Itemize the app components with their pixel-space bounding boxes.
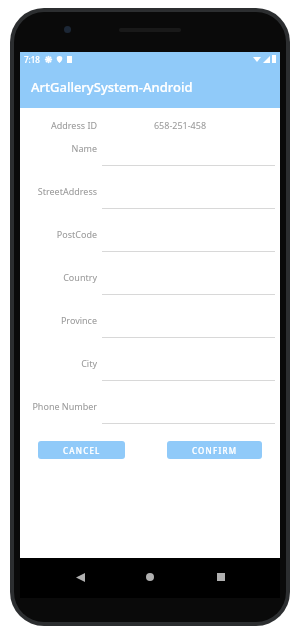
- staticText: Phone Number: [20, 400, 97, 412]
- button[interactable]: Recent apps: [210, 566, 232, 588]
- staticText: Address ID: [20, 119, 97, 131]
- staticText: Country: [20, 271, 97, 283]
- staticText: 7:18: [24, 54, 40, 65]
- staticText: Province: [20, 314, 97, 326]
- staticText: StreetAddress: [20, 185, 97, 197]
- button[interactable]: Province: [20, 313, 280, 351]
- button[interactable]: Country: [20, 270, 280, 308]
- staticText: CANCEL: [63, 445, 101, 456]
- staticText: 658-251-458: [140, 119, 220, 131]
- button[interactable]: Back: [69, 566, 91, 588]
- staticText: CONFIRM: [192, 445, 238, 456]
- staticText: PostCode: [20, 228, 97, 240]
- staticText: City: [20, 357, 97, 369]
- button[interactable]: City: [20, 356, 280, 394]
- staticText: Name: [20, 142, 97, 154]
- button[interactable]: Phone Number: [20, 399, 280, 437]
- button[interactable]: StreetAddress: [20, 184, 280, 222]
- staticText: ArtGallerySystem-Android: [31, 78, 193, 96]
- button[interactable]: PostCode: [20, 227, 280, 265]
- button[interactable]: CANCEL: [38, 441, 125, 459]
- button[interactable]: Home: [139, 566, 161, 588]
- button[interactable]: CONFIRM: [167, 441, 262, 459]
- button[interactable]: Name: [20, 141, 280, 179]
